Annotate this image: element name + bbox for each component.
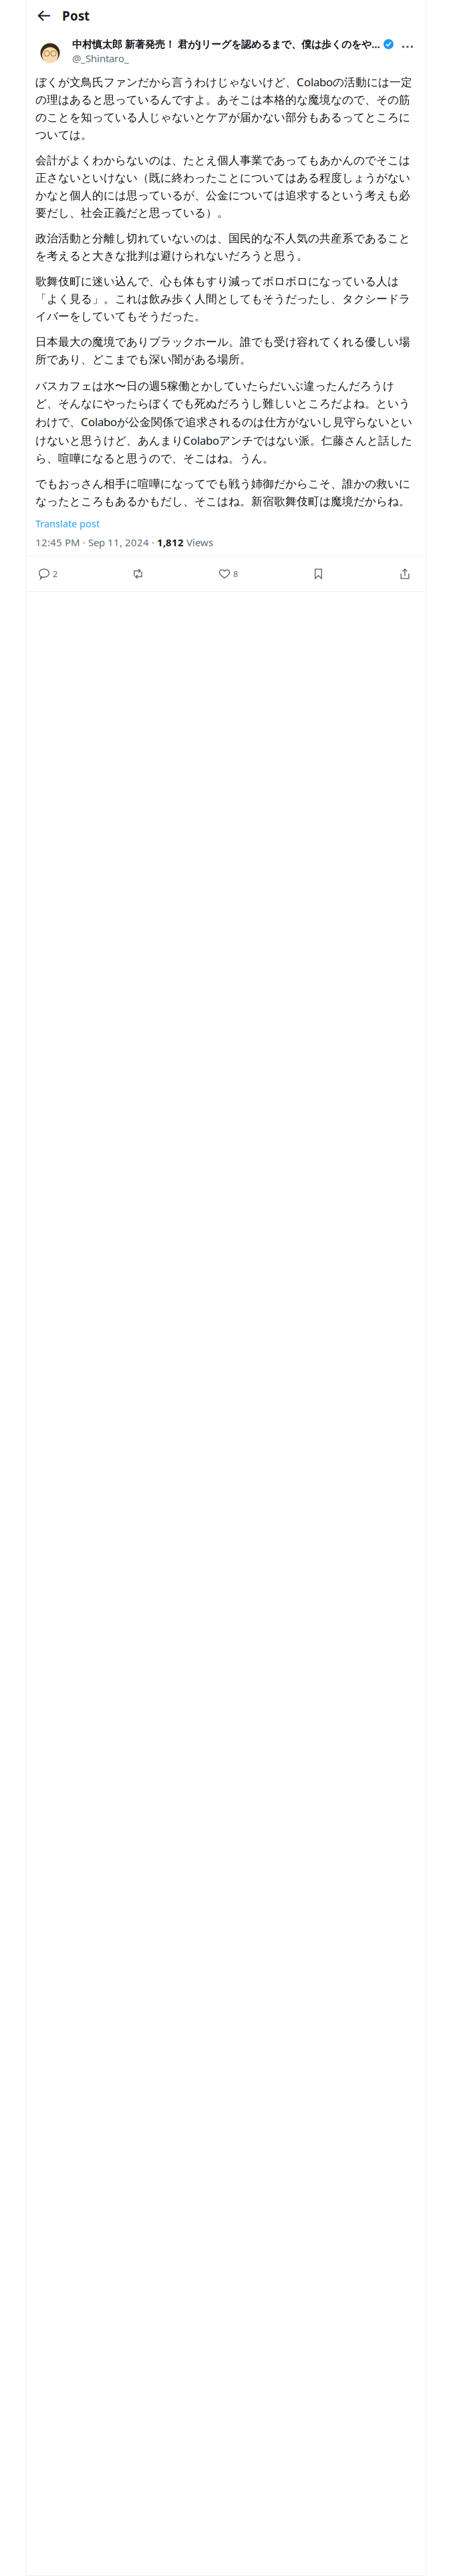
staticText: 1,812 — [157, 535, 184, 549]
staticText: 12:45 PM · Sep 11, 2024 · — [35, 535, 157, 549]
staticText: 日本最大の魔境でありブラックホール。誰でも受け容れてくれる優しい場所であり、どこ… — [35, 335, 410, 367]
staticText: 歌舞伎町に迷い込んで、心も体もすり減ってボロボロになっている人は「よく見る」。こ… — [35, 274, 410, 324]
staticText: Post — [62, 7, 90, 24]
staticText: 会計がよくわからないのは、たとえ個人事業であってもあかんのでそこは正さないといけ… — [35, 153, 410, 220]
staticText: Views — [184, 535, 213, 549]
staticText: でもおっさん相手に喧嘩になってでも戦う姉御だからこそ、誰かの救いになったところも… — [35, 477, 410, 509]
staticText: 8 — [233, 568, 238, 580]
staticText: Translate post — [35, 517, 100, 530]
staticText: バスカフェは水〜日の週5稼働とかしていたらだいぶ違ったんだろうけど、そんなにやっ… — [35, 378, 412, 466]
button[interactable]: Back — [26, 0, 62, 31]
staticText: 中村慎太郎 新著発売！ 君がJリーグを認めるまで、僕は歩くのをや… — [72, 37, 380, 51]
button[interactable]: Translate post — [26, 509, 100, 530]
button[interactable]: Repost — [132, 562, 144, 586]
button[interactable]: More — [398, 37, 418, 57]
staticText: 2 — [53, 568, 57, 580]
button[interactable]: Reply — [38, 562, 57, 586]
button[interactable]: Like — [218, 562, 238, 586]
staticText: @_Shintaro_ — [72, 51, 129, 65]
staticText: 政治活動と分離し切れていないのは、国民的な不人気の共産系であることを考えると大き… — [35, 231, 410, 263]
button[interactable]: Bookmark — [312, 562, 324, 586]
staticText: ぼくが文鳥氏ファンだから言うわけじゃないけど、Colaboの活動には一定の理はあ… — [35, 74, 412, 142]
button[interactable]: Share — [399, 562, 411, 586]
